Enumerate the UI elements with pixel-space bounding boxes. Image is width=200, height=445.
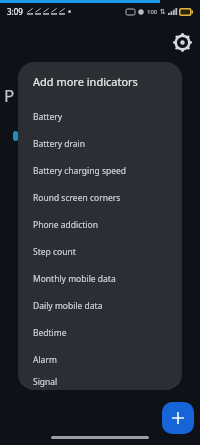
staticText: P [4, 84, 15, 107]
button[interactable]: Settings [170, 30, 194, 54]
staticText: Daily mobile data [33, 300, 103, 312]
button[interactable]: Battery drain [18, 130, 182, 157]
staticText: Signal [33, 376, 58, 388]
staticText: ⇅ [160, 8, 166, 16]
button[interactable]: Signal [18, 373, 182, 390]
staticText: Battery drain [33, 138, 86, 150]
button[interactable]: Monthly mobile data [18, 265, 182, 292]
staticText: 100 [147, 8, 158, 16]
staticText: Add more indicators [33, 74, 138, 89]
staticText: Battery charging speed [33, 165, 127, 177]
staticText: Alarm [33, 354, 57, 366]
button[interactable]: Daily mobile data [18, 292, 182, 319]
button[interactable]: Bedtime [18, 319, 182, 346]
button[interactable]: Battery [18, 103, 182, 130]
button[interactable]: Alarm [18, 346, 182, 373]
staticText: Step count [33, 246, 76, 258]
staticText: Round screen corners [33, 192, 121, 204]
button[interactable]: Round screen corners [18, 184, 182, 211]
staticText: Phone addiction [33, 219, 98, 231]
staticText: Bedtime [33, 327, 67, 339]
staticText: 3:09 [7, 6, 23, 17]
button[interactable]: Battery charging speed [18, 157, 182, 184]
staticText: Battery [33, 111, 63, 123]
button[interactable]: Step count [18, 238, 182, 265]
staticText: Monthly mobile data [33, 273, 116, 285]
button[interactable]: Phone addiction [18, 211, 182, 238]
button[interactable]: Add [162, 402, 194, 434]
